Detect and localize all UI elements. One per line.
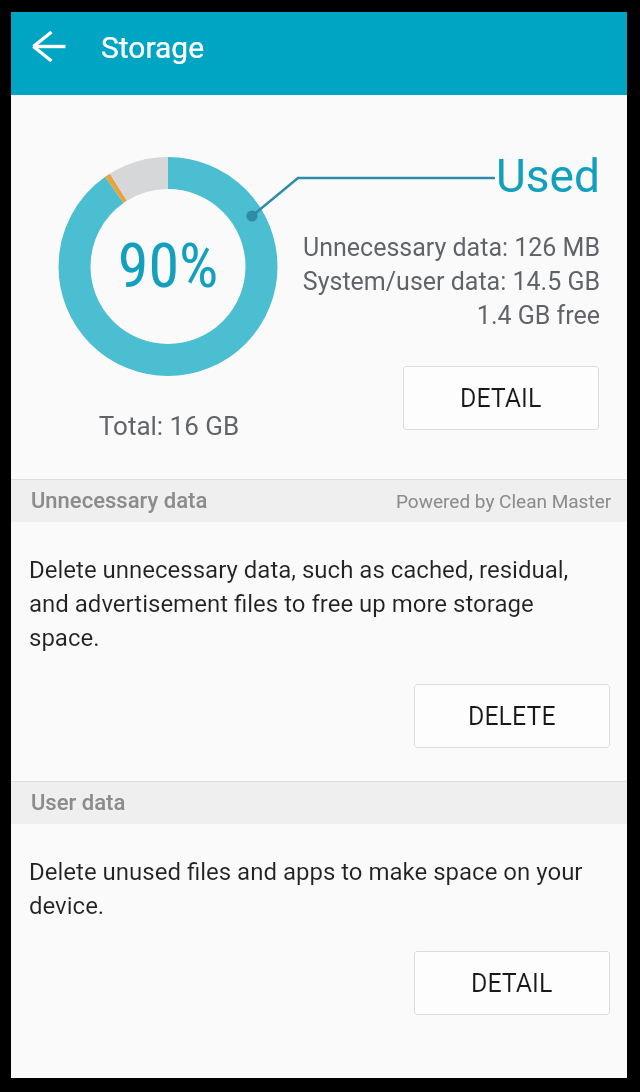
staticText: Storage — [101, 30, 205, 65]
staticText: Delete unused files and apps to make spa… — [29, 858, 583, 886]
staticText: and advertisement files to free up more … — [29, 590, 534, 618]
staticText: 90% — [68, 229, 268, 302]
staticText: Powered by Clean Master — [396, 490, 612, 512]
staticText: Delete unnecessary data, such as cached,… — [29, 556, 569, 584]
staticText: space. — [29, 624, 100, 652]
staticText: DETAIL — [460, 384, 542, 413]
staticText: DETAIL — [471, 969, 553, 998]
button[interactable]: DETAIL — [403, 366, 599, 430]
button[interactable]: DETAIL — [414, 951, 610, 1015]
staticText: Unnecessary data: 126 MB — [300, 233, 600, 262]
staticText: device. — [29, 892, 105, 920]
button[interactable]: Back — [22, 20, 78, 76]
staticText: Unnecessary data — [31, 488, 208, 514]
staticText: Used — [496, 149, 600, 203]
staticText: Total: 16 GB — [69, 411, 269, 441]
staticText: System/user data: 14.5 GB — [300, 267, 600, 296]
button[interactable]: DELETE — [414, 684, 610, 748]
staticText: 1.4 GB free — [300, 301, 600, 330]
staticText: User data — [31, 790, 126, 816]
staticText: DELETE — [468, 702, 556, 731]
